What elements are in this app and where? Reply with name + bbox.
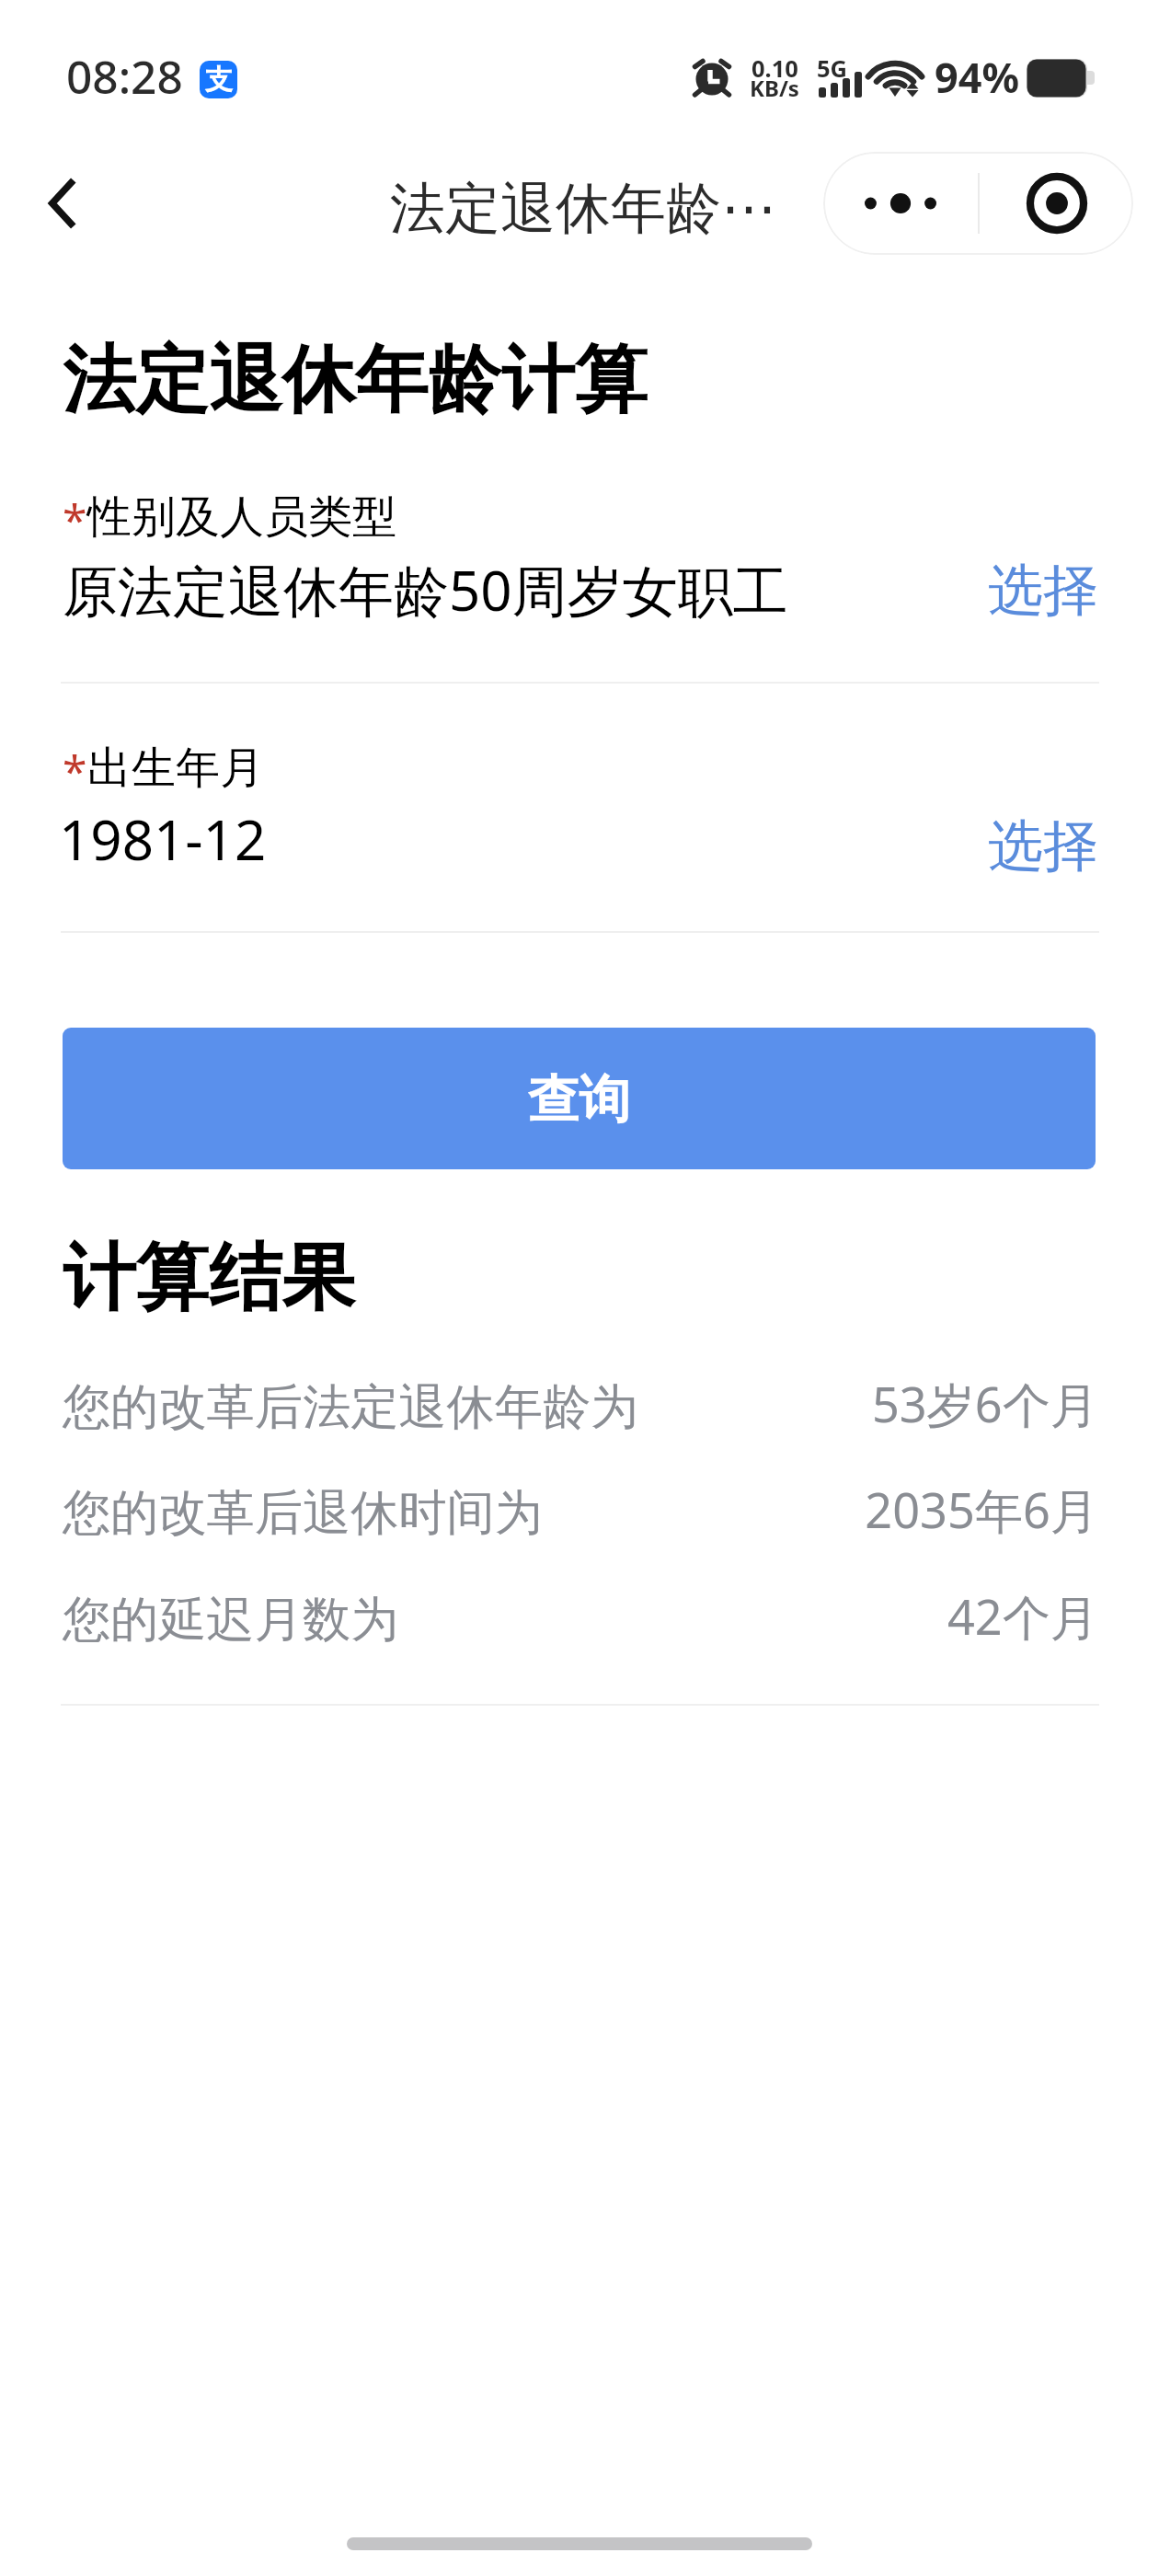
staticText: 法定退休年龄⋯ (390, 174, 776, 244)
button[interactable]: More options (823, 152, 978, 255)
staticText: * (63, 489, 87, 549)
staticText: 您的改革后退休时间为 (63, 1483, 543, 1544)
staticText: 94% (935, 49, 1020, 105)
staticText: 42个月 (552, 1583, 1098, 1649)
staticText: 原法定退休年龄50周岁女职工 (63, 552, 788, 627)
button[interactable]: 选择 (968, 545, 1119, 640)
staticText: 您的延迟月数为 (63, 1590, 399, 1650)
button[interactable]: Close mini program (980, 152, 1133, 255)
button[interactable]: 选择 (968, 800, 1119, 896)
staticText: 计算结果 (63, 1232, 355, 1324)
staticText: 1981-12 (59, 801, 267, 877)
staticText: 选择 (988, 811, 1098, 881)
staticText: 您的改革后法定退休年龄为 (63, 1377, 639, 1438)
staticText: 5G (817, 52, 848, 85)
staticText: 支 (205, 63, 233, 98)
staticText: 性别及人员类型 (87, 489, 396, 545)
staticText: 53岁6个月 (552, 1371, 1098, 1436)
staticText: 查询 (528, 1068, 630, 1133)
staticText: 0.10 (752, 52, 798, 85)
button[interactable]: Back (20, 162, 103, 245)
staticText: 选择 (988, 556, 1098, 626)
staticText: 法定退休年龄计算 (63, 334, 648, 426)
button[interactable]: 查询 (63, 1028, 1096, 1169)
staticText: * (63, 741, 87, 800)
staticText: 08:28 (66, 45, 183, 107)
staticText: KB/s (750, 73, 799, 103)
staticText: 2035年6月 (552, 1477, 1098, 1542)
button[interactable] (0, 459, 1159, 682)
button[interactable] (0, 710, 1159, 931)
staticText: 出生年月 (87, 741, 264, 796)
